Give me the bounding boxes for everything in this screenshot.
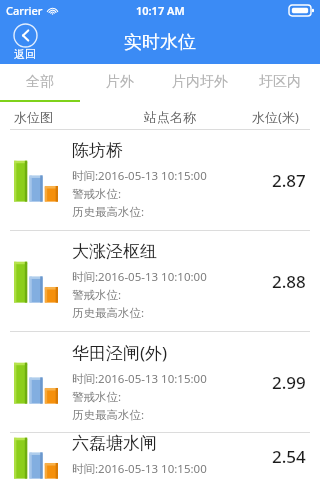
staticText: 历史最高水位: [72,305,145,321]
button[interactable]: 全部 [0,64,80,104]
staticText: 时间:2016-05-13 10:10:00 [72,269,207,285]
staticText: 陈坊桥 [72,140,123,161]
button[interactable]: 片内圩外 [160,64,240,104]
staticText: 圩区内 [259,73,301,91]
staticText: 片内圩外 [172,73,228,91]
staticText: 2.87 [272,169,306,192]
button[interactable]: 六磊塘水闸 [0,433,320,480]
staticText: 2.99 [272,371,306,394]
button[interactable]: 返回 [8,20,42,64]
staticText: 时间:2016-05-13 10:15:00 [72,371,207,387]
staticText: 警戒水位: [72,186,122,202]
button[interactable]: 陈坊桥 [0,130,320,231]
staticText: 大涨泾枢纽 [72,241,157,262]
staticText: 时间:2016-05-13 10:15:00 [72,461,207,477]
staticText: 10:17 AM [136,3,185,18]
staticText: Carrier [6,3,43,18]
button[interactable]: 大涨泾枢纽 [0,231,320,332]
staticText: 片外 [106,73,134,91]
staticText: 2.88 [272,270,306,293]
staticText: 历史最高水位: [72,407,145,423]
staticText: 水位(米) [252,108,299,126]
staticText: 时间:2016-05-13 10:15:00 [72,168,207,184]
button[interactable]: 华田泾闸(外) [0,332,320,433]
staticText: 全部 [26,73,54,91]
staticText: 水位图 [14,109,53,125]
staticText: 警戒水位: [72,389,122,405]
button[interactable]: 圩区内 [240,64,320,104]
staticText: 2.54 [272,445,306,468]
staticText: 返回 [14,47,36,61]
staticText: 实时水位 [124,31,196,54]
staticText: 六磊塘水闸 [72,433,157,454]
staticText: 警戒水位: [72,287,122,303]
staticText: 站点名称 [144,109,196,125]
staticText: 华田泾闸(外) [72,341,168,364]
staticText: 历史最高水位: [72,204,145,220]
button[interactable]: 片外 [80,64,160,104]
